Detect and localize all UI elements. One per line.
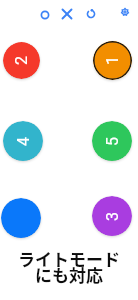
staticText: ライトモード bbox=[18, 246, 120, 271]
button[interactable] bbox=[1, 198, 41, 238]
staticText: 3 bbox=[103, 212, 122, 221]
button[interactable]: 3 bbox=[92, 196, 132, 236]
button[interactable]: Record bbox=[38, 8, 52, 22]
staticText: 1 bbox=[103, 56, 122, 65]
button[interactable]: Settings bbox=[118, 5, 132, 19]
staticText: 2 bbox=[12, 56, 31, 65]
staticText: にも対応 bbox=[35, 262, 103, 287]
button[interactable]: 4 bbox=[3, 121, 43, 161]
button[interactable]: 2 bbox=[3, 42, 40, 79]
button[interactable]: Close bbox=[60, 7, 74, 21]
button[interactable]: 1 bbox=[93, 41, 132, 80]
button[interactable]: Refresh bbox=[84, 7, 98, 21]
staticText: 4 bbox=[14, 137, 33, 146]
staticText: 5 bbox=[103, 137, 122, 146]
button[interactable]: 5 bbox=[92, 121, 132, 161]
